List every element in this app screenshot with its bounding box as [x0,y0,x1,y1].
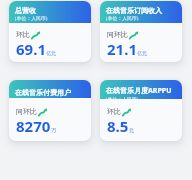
staticText: 8270 [16,116,51,136]
staticText: 环比 [107,107,121,116]
staticText: 总营收 [15,6,36,15]
button[interactable]: 在线音乐付费用户 [9,80,91,141]
staticText: 亿元 [46,50,56,56]
staticText: 同环比 [16,107,37,116]
staticText: 21.1 [107,39,137,59]
staticText: （单位：人民币） [12,15,51,21]
staticText: 在线音乐订阅收入 [106,6,162,15]
staticText: 亿元 [137,50,147,56]
button[interactable]: 总营收 [9,1,91,62]
staticText: 元 [129,127,134,133]
staticText: 万 [51,127,56,133]
staticText: 在线音乐付费用户 [15,88,71,97]
staticText: （单位：人民币） [103,96,142,99]
button[interactable]: 在线音乐月度ARPPU [100,80,182,141]
staticText: 在线音乐月度ARPPU [106,86,172,96]
button[interactable]: 在线音乐订阅收入 [100,1,182,62]
staticText: 8.5 [107,116,129,136]
staticText: （单位：人民币） [103,15,142,21]
staticText: 69.1 [16,39,46,59]
staticText: 环比 [16,30,30,39]
staticText: 同环比 [107,30,128,39]
